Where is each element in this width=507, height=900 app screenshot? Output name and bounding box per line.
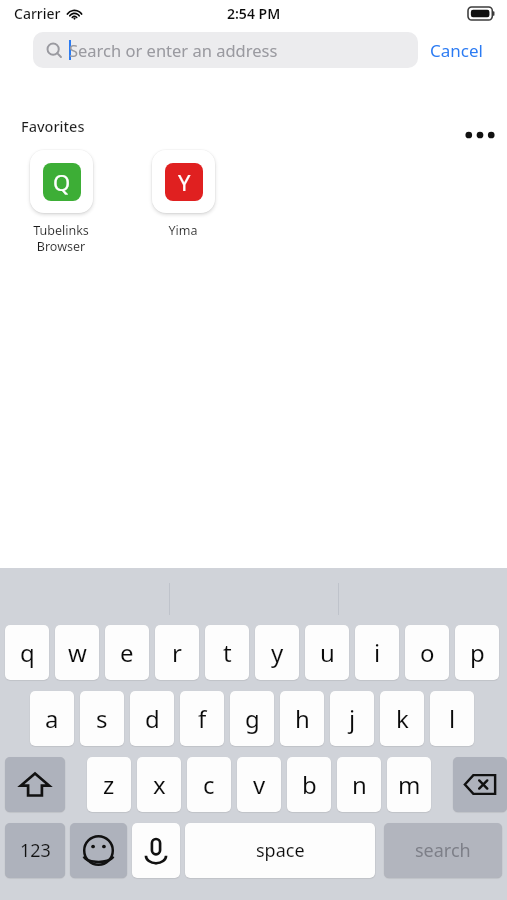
staticText: n	[352, 768, 367, 801]
button[interactable]: h	[280, 691, 324, 746]
staticText: Yima	[168, 222, 198, 239]
button[interactable]: v	[237, 757, 281, 812]
staticText: p	[470, 636, 485, 669]
staticText: h	[295, 702, 310, 735]
button[interactable]: Backspace	[453, 757, 507, 812]
button[interactable]: Emoji	[70, 823, 127, 878]
staticText: Favorites	[21, 116, 85, 136]
staticText: u	[320, 636, 335, 669]
button[interactable]: o	[405, 625, 449, 680]
button[interactable]: e	[105, 625, 149, 680]
staticText: w	[68, 636, 87, 669]
staticText: search	[415, 838, 471, 863]
button[interactable]: 123	[5, 823, 65, 878]
button[interactable]: p	[455, 625, 499, 680]
staticText: s	[96, 702, 108, 735]
button[interactable]: Cancel	[418, 33, 495, 68]
staticText: z	[103, 768, 115, 801]
staticText: Tubelinks Browser	[33, 222, 89, 254]
button[interactable]: l	[430, 691, 474, 746]
staticText: Search or enter an address	[69, 39, 278, 61]
button[interactable]: Q	[23, 150, 99, 254]
button[interactable]: a	[30, 691, 74, 746]
staticText: d	[145, 702, 160, 735]
button[interactable]: space	[185, 823, 375, 878]
button[interactable]: Y	[145, 150, 221, 239]
button[interactable]: search	[384, 823, 502, 878]
staticText: t	[223, 636, 232, 669]
button[interactable]: m	[387, 757, 431, 812]
button[interactable]: t	[205, 625, 249, 680]
button[interactable]: n	[337, 757, 381, 812]
staticText: Cancel	[430, 39, 483, 62]
button[interactable]: u	[305, 625, 349, 680]
button[interactable]: x	[137, 757, 181, 812]
staticText: i	[374, 636, 381, 669]
button[interactable]: w	[55, 625, 99, 680]
staticText: 123	[20, 838, 51, 863]
button[interactable]: q	[5, 625, 49, 680]
staticText: c	[203, 768, 215, 801]
button[interactable]: y	[255, 625, 299, 680]
staticText: f	[198, 702, 207, 735]
staticText: b	[302, 768, 317, 801]
staticText: Q	[53, 167, 71, 197]
button[interactable]: b	[287, 757, 331, 812]
button[interactable]: f	[180, 691, 224, 746]
staticText: 2:54 PM	[227, 4, 281, 23]
button[interactable]: c	[187, 757, 231, 812]
staticText: Carrier	[14, 4, 61, 23]
staticText: o	[420, 636, 435, 669]
button[interactable]: s	[80, 691, 124, 746]
staticText: e	[120, 636, 134, 669]
staticText: x	[153, 768, 166, 801]
staticText: Y	[178, 167, 191, 197]
staticText: g	[245, 702, 260, 735]
staticText: a	[45, 702, 59, 735]
button[interactable]: Search or enter an address	[33, 32, 418, 68]
button[interactable]: z	[87, 757, 131, 812]
button[interactable]: Shift	[5, 757, 65, 812]
staticText: m	[398, 768, 421, 801]
button[interactable]: Dictate	[132, 823, 180, 878]
staticText: r	[172, 636, 182, 669]
staticText: v	[253, 768, 266, 801]
staticText: q	[20, 636, 35, 669]
button[interactable]: j	[330, 691, 374, 746]
staticText: y	[271, 636, 284, 669]
button[interactable]: d	[130, 691, 174, 746]
button[interactable]: More options	[453, 108, 507, 162]
button[interactable]: r	[155, 625, 199, 680]
staticText: k	[396, 702, 409, 735]
button[interactable]: i	[355, 625, 399, 680]
staticText: space	[256, 838, 305, 863]
button[interactable]: k	[380, 691, 424, 746]
staticText: l	[449, 702, 456, 735]
staticText: j	[349, 702, 356, 735]
button[interactable]: g	[230, 691, 274, 746]
